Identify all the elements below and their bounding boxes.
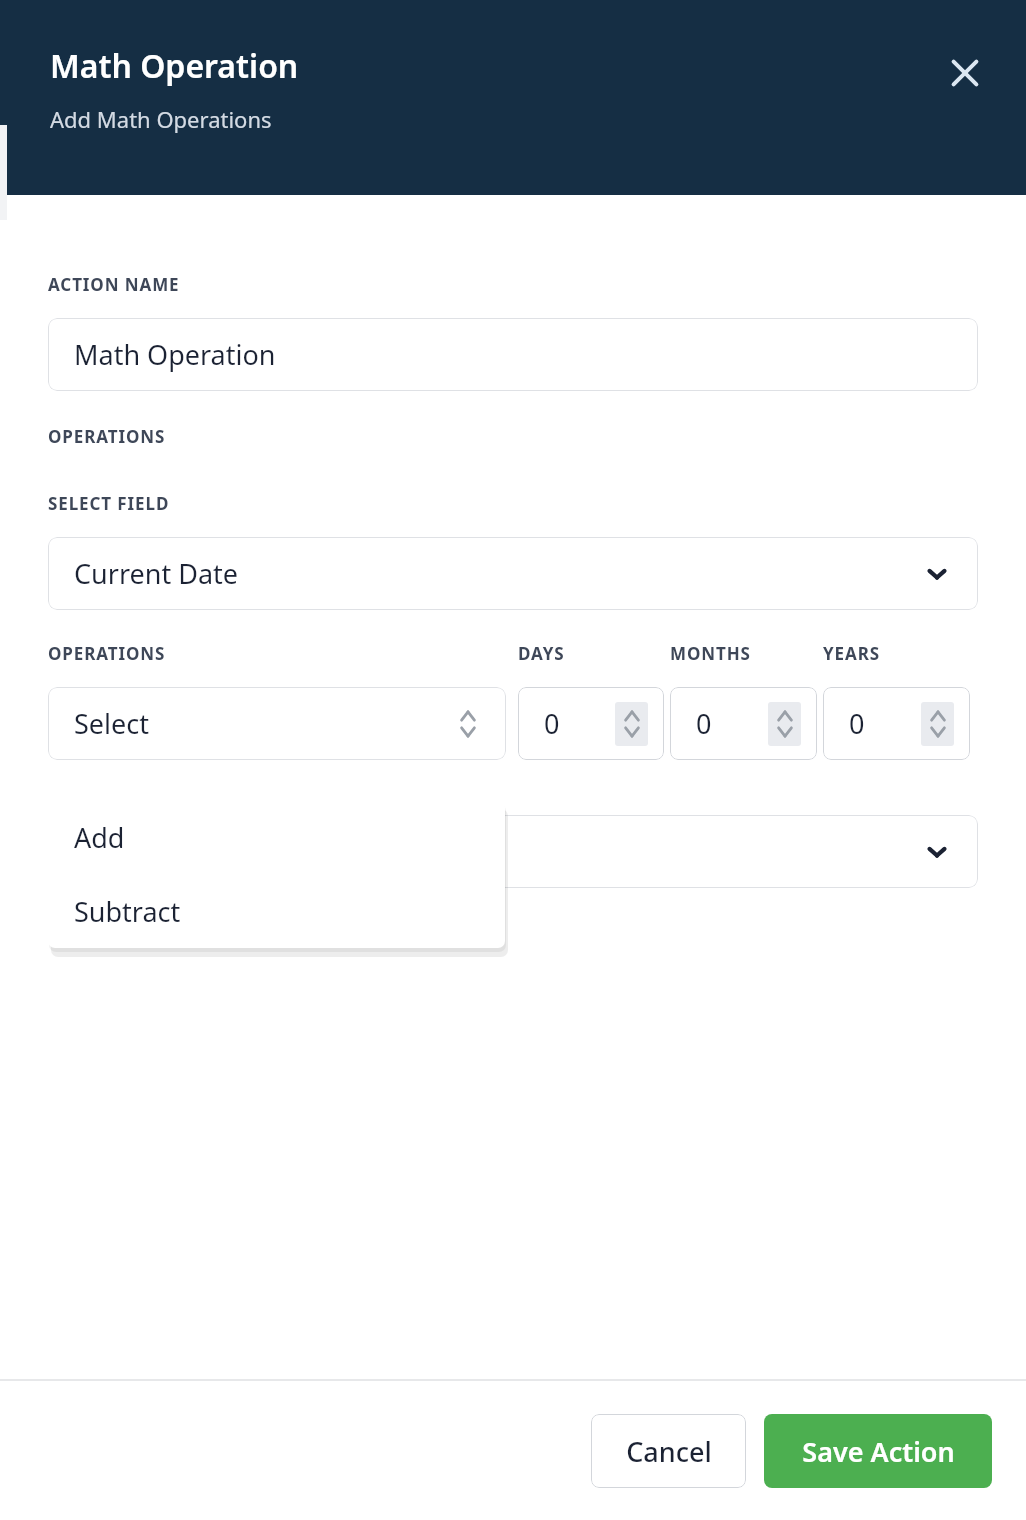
staticText: Add Math Operations [50,104,272,134]
staticText: 0 [544,705,560,742]
staticText: Save Action [802,1433,955,1470]
button[interactable]: Select [48,687,506,760]
staticText: YEARS [823,642,880,665]
staticText: Add [74,819,125,856]
staticText: ACTION NAME [48,273,180,296]
button[interactable] [48,815,978,888]
staticText: Math Operation [50,44,299,88]
button[interactable]: Cancel [591,1414,746,1488]
button[interactable]: Add [48,800,505,874]
button[interactable]: 0 [518,687,664,760]
button[interactable]: Current Date [48,537,978,610]
staticText: SELECT FIELD [48,492,170,515]
button[interactable]: Subtract [48,874,505,948]
staticText: Current Date [74,555,239,592]
button[interactable]: 0 [823,687,970,760]
staticText: MONTHS [670,642,823,665]
staticText: Subtract [74,893,181,930]
button[interactable]: Save Action [764,1414,992,1488]
button[interactable]: Close [936,44,994,102]
button[interactable]: 0 [670,687,817,760]
staticText: Select [74,705,149,742]
staticText: 0 [849,705,865,742]
staticText: DAYS [518,642,670,665]
staticText: 0 [696,705,712,742]
staticText: OPERATIONS [48,425,166,448]
button[interactable]: Math Operation [48,318,978,391]
staticText: Math Operation [74,336,276,373]
staticText: OPERATIONS [48,642,518,665]
staticText: Cancel [626,1433,712,1470]
